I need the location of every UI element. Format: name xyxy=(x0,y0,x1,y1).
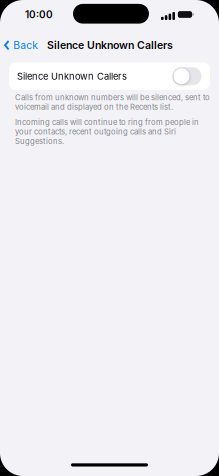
staticText: Back xyxy=(13,39,38,51)
staticText: your contacts, recent outgoing calls and… xyxy=(15,127,176,136)
staticText: voicemail and displayed on the Recents l… xyxy=(15,102,173,112)
staticText: Calls from unknown numbers will be silen… xyxy=(15,93,210,102)
staticText: Silence Unknown Callers xyxy=(47,39,173,52)
staticText: Incoming calls will continue to ring fro… xyxy=(15,118,199,127)
button[interactable]: Silence Unknown Callers xyxy=(9,62,210,90)
staticText: 10:00 xyxy=(25,8,53,21)
staticText: Silence Unknown Callers xyxy=(17,71,127,82)
staticText: Suggestions. xyxy=(15,137,64,146)
button[interactable]: Back xyxy=(0,39,38,51)
